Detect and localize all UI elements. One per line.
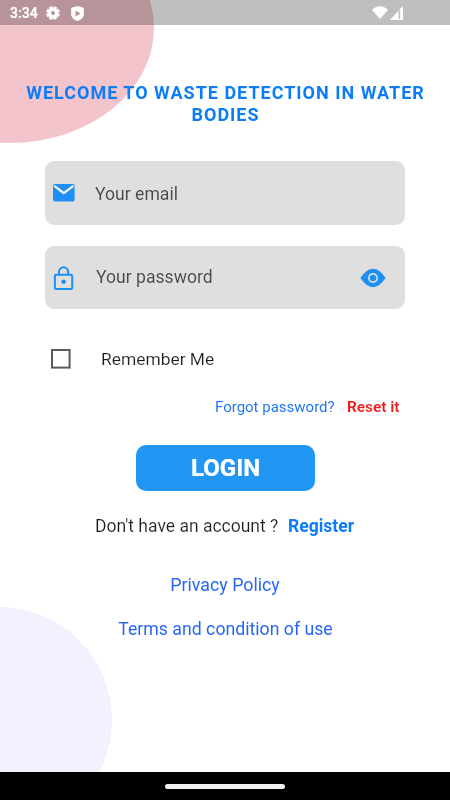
button[interactable]: Your password — [45, 246, 405, 309]
button[interactable]: Remember Me — [45, 343, 225, 375]
button[interactable]: Forgot password? — [215, 398, 335, 416]
staticText: WELCOME TO WASTE DETECTION IN WATER — [26, 82, 425, 103]
staticText: LOGIN — [191, 454, 261, 482]
button[interactable]: LOGIN — [136, 445, 315, 491]
button[interactable]: Privacy Policy — [170, 574, 280, 595]
button[interactable]: Show password — [357, 262, 389, 294]
button[interactable]: Your email — [45, 161, 405, 225]
staticText: Your email — [95, 184, 178, 205]
button[interactable]: Terms and condition of use — [118, 619, 333, 640]
staticText: Don't have an account ? — [95, 516, 279, 537]
staticText: Your password — [96, 267, 213, 288]
staticText: 3:34 — [10, 5, 38, 21]
staticText: Remember Me — [101, 349, 215, 369]
staticText: BODIES — [191, 104, 260, 125]
button[interactable]: Register — [288, 516, 355, 537]
button[interactable]: Reset it — [347, 398, 400, 416]
